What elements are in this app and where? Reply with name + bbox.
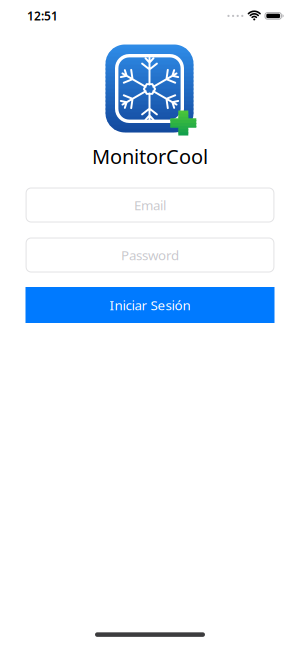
staticText: Email — [134, 196, 166, 214]
button[interactable]: Email — [26, 187, 274, 222]
button[interactable]: Password — [26, 237, 274, 272]
staticText: Password — [121, 246, 179, 264]
staticText: MonitorCool — [92, 143, 208, 170]
staticText: Iniciar Sesión — [109, 296, 190, 314]
staticText: 12:51 — [27, 8, 58, 24]
button[interactable]: Iniciar Sesión — [25, 287, 274, 323]
